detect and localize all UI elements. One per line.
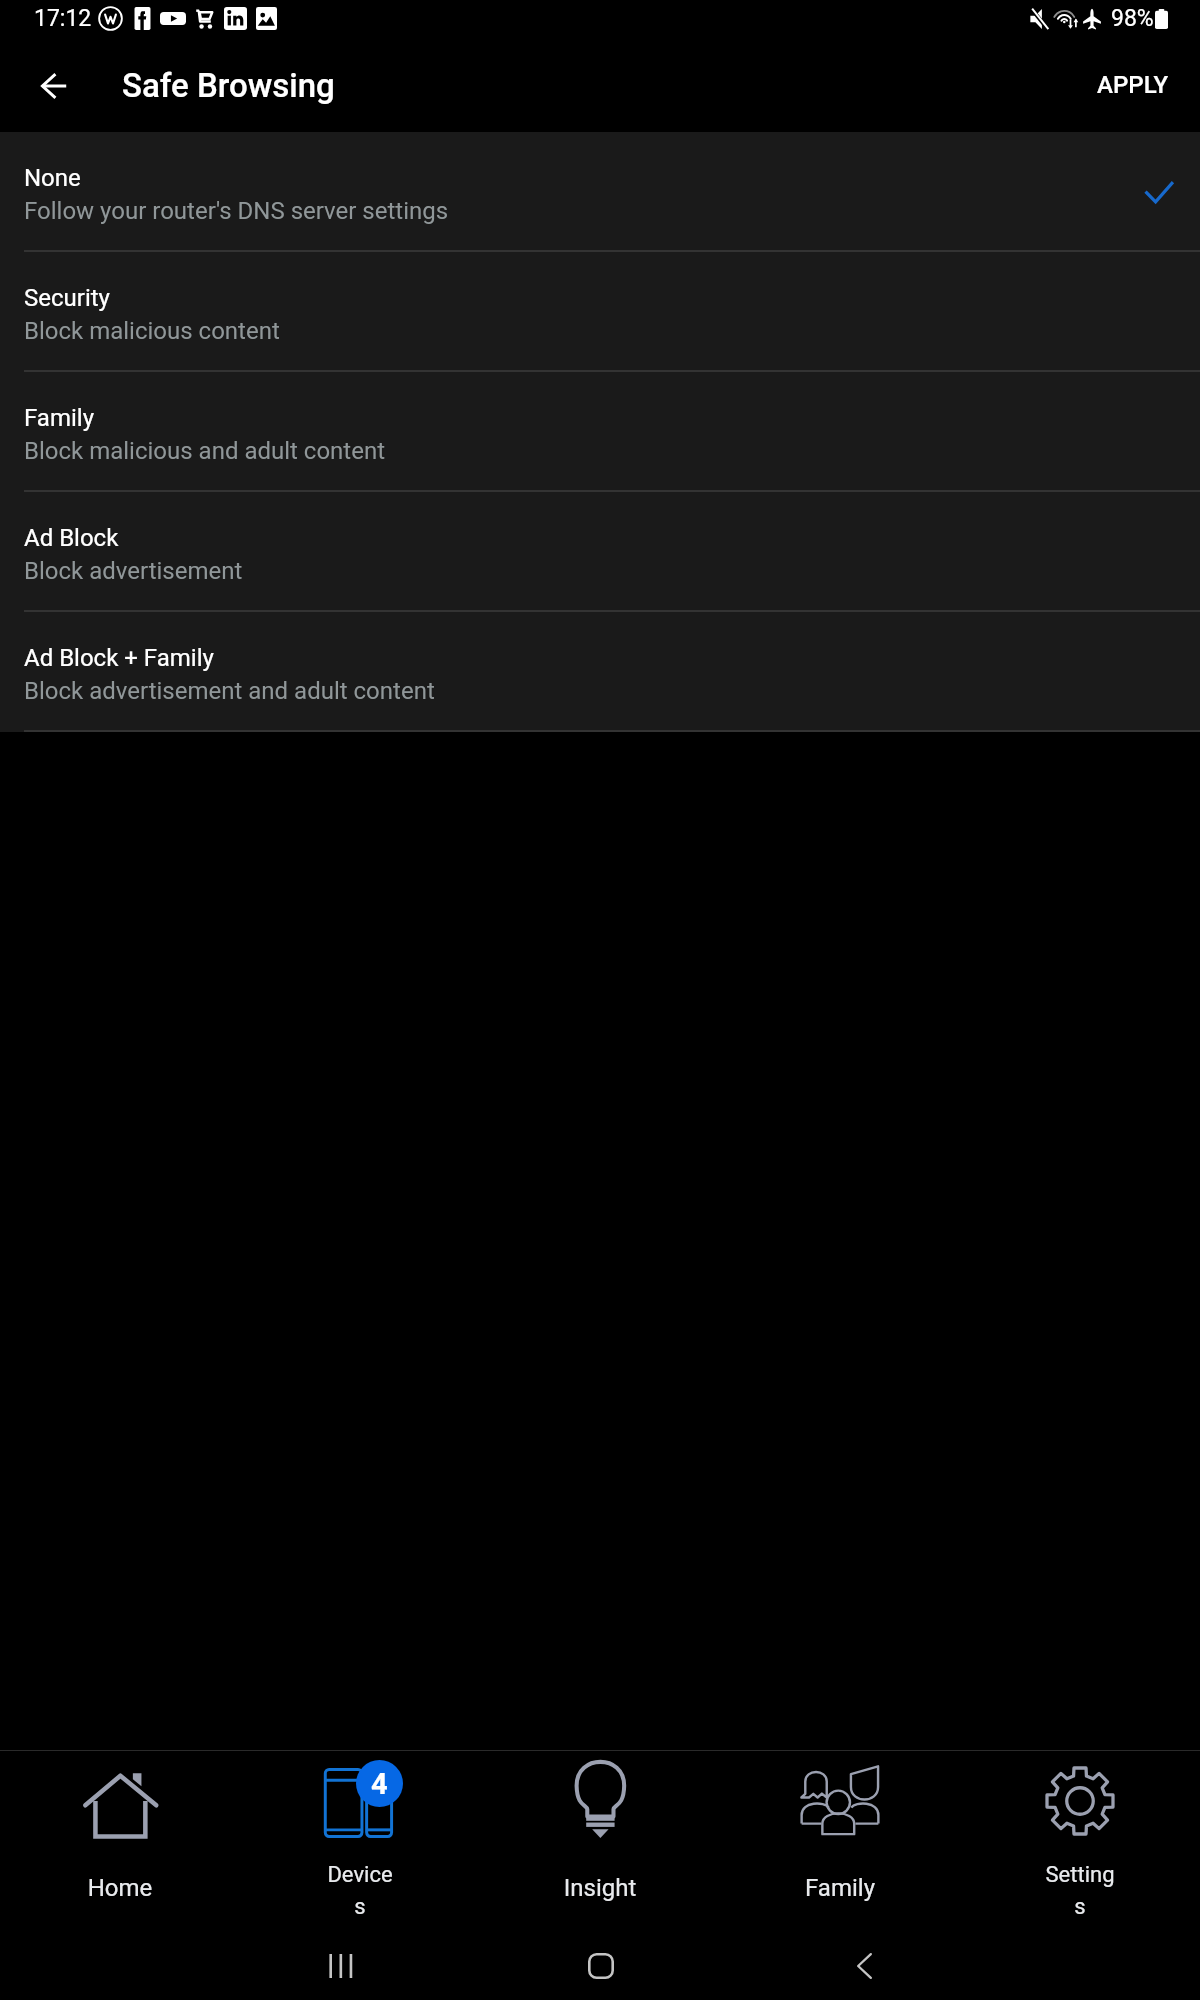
staticText: Settings — [1045, 1862, 1115, 1920]
staticText: Block malicious content — [24, 317, 280, 345]
button[interactable]: Back — [824, 1926, 904, 2000]
button[interactable]: Home — [561, 1926, 641, 2000]
staticText: 17:12 — [34, 5, 92, 32]
staticText: Follow your router's DNS server settings — [24, 197, 449, 225]
staticText: Block advertisement and adult content — [24, 677, 435, 705]
staticText: Block malicious and adult content — [24, 437, 386, 465]
button[interactable]: Settings — [960, 1750, 1200, 1920]
staticText: Ad Block — [24, 524, 119, 552]
button[interactable]: Insight — [480, 1750, 720, 1920]
button[interactable]: Back — [12, 45, 96, 127]
button[interactable]: Home — [0, 1750, 240, 1920]
staticText: None — [24, 164, 81, 192]
staticText: 98% — [1111, 5, 1154, 32]
button[interactable]: Ad Block + Family — [0, 612, 1200, 732]
staticText: APPLY — [1097, 71, 1169, 99]
staticText: Safe Browsing — [122, 66, 335, 105]
button[interactable]: Ad Block — [0, 492, 1200, 612]
button[interactable]: APPLY — [1066, 47, 1200, 123]
button[interactable]: Recents — [299, 1926, 379, 2000]
button[interactable]: 4 — [240, 1750, 480, 1920]
staticText: Security — [24, 284, 110, 312]
staticText: Devices — [325, 1862, 395, 1920]
staticText: Home — [50, 1874, 190, 1902]
staticText: Family — [24, 404, 94, 432]
staticText: Insight — [530, 1874, 670, 1902]
button[interactable]: Family — [0, 372, 1200, 492]
button[interactable]: Security — [0, 252, 1200, 372]
staticText: Family — [770, 1874, 910, 1902]
button[interactable]: Family — [720, 1750, 960, 1920]
staticText: Block advertisement — [24, 557, 243, 585]
button[interactable]: None — [0, 132, 1200, 252]
staticText: Ad Block + Family — [24, 644, 214, 672]
staticText: 4 — [371, 1767, 388, 1801]
